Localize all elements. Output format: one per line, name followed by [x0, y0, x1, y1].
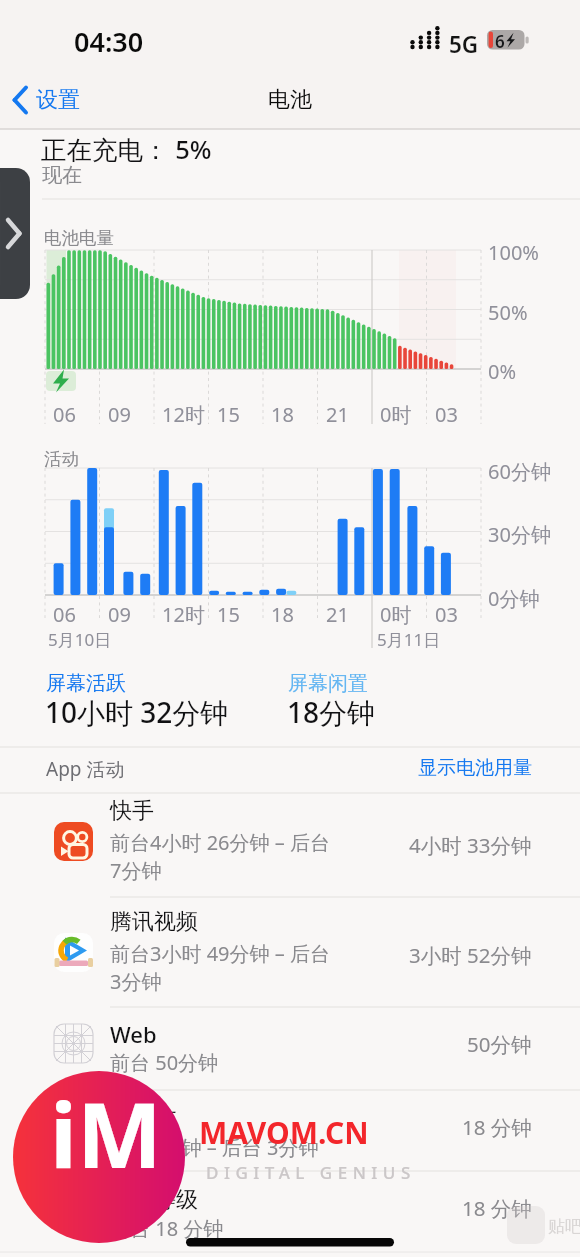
staticText: 前台8分钟 – 后台 3分钟	[110, 1134, 319, 1161]
staticText: 屏幕活跃	[46, 671, 126, 696]
staticText: 15	[217, 601, 240, 628]
staticText: 18	[271, 401, 294, 428]
staticText: App 活动	[46, 756, 125, 782]
staticText: 5月10日	[48, 628, 112, 651]
staticText: 06	[53, 601, 76, 628]
staticText: 前台3小时 49分钟 – 后台	[110, 940, 330, 967]
button[interactable]	[0, 168, 30, 299]
staticText: DIGITAL GENIUS	[206, 1161, 416, 1184]
staticText: 0时	[380, 401, 412, 428]
staticText: 21	[326, 601, 349, 628]
staticText: 电池电量	[44, 227, 114, 249]
staticText: 前台 50分钟	[110, 1049, 219, 1076]
staticText: Web	[110, 1019, 157, 1049]
staticText: 3小时 52分钟	[409, 941, 532, 969]
staticText: 5G	[449, 29, 479, 60]
staticText: 50分钟	[467, 1030, 532, 1058]
staticText: 5月11日	[377, 628, 441, 651]
staticText: 18 分钟	[462, 1113, 532, 1141]
staticText: 21	[326, 401, 349, 428]
staticText: 0分钟	[488, 585, 540, 612]
staticText: 12时	[162, 601, 205, 628]
staticText: 显示电池用量	[418, 756, 532, 780]
staticText: iM	[50, 1072, 162, 1195]
staticText: 腾讯视频	[110, 908, 198, 936]
staticText: 设置	[36, 86, 80, 114]
staticText: 信任等级	[110, 1186, 198, 1214]
staticText: 03	[435, 601, 458, 628]
staticText: 前台4小时 26分钟 – 后台	[110, 829, 330, 856]
staticText: 电池	[268, 86, 312, 114]
staticText: 12时	[162, 401, 205, 428]
staticText: 09	[108, 601, 131, 628]
staticText: 4小时 33分钟	[409, 831, 532, 859]
button[interactable]: 显示电池用量	[212, 756, 532, 780]
staticText: 18	[271, 601, 294, 628]
staticText: 现在	[42, 163, 82, 188]
staticText: 爱奇艺	[110, 1106, 176, 1134]
staticText: 3分钟	[110, 968, 162, 995]
staticText: 6	[495, 30, 505, 53]
staticText: 09	[108, 401, 131, 428]
staticText: 06	[53, 401, 76, 428]
button[interactable]	[42, 1012, 542, 1087]
staticText: 快手	[110, 797, 154, 825]
staticText: 屏幕闲置	[288, 671, 368, 696]
staticText: 前台 18 分钟	[110, 1215, 224, 1242]
staticText: MAVOM.CN	[199, 1112, 369, 1153]
staticText: 04:30	[74, 23, 144, 60]
staticText: 0%	[488, 358, 517, 385]
staticText: 7分钟	[110, 857, 162, 884]
button[interactable]	[42, 905, 542, 1000]
staticText: 100%	[488, 239, 539, 266]
staticText: 18分钟	[287, 693, 376, 731]
staticText: 0时	[380, 601, 412, 628]
staticText: 10小时 32分钟	[45, 693, 229, 731]
staticText: 50%	[488, 299, 528, 326]
staticText: 活动	[44, 448, 79, 470]
staticText: 60分钟	[488, 458, 551, 485]
staticText: 正在充电： 5%	[41, 132, 212, 167]
staticText: 03	[435, 401, 458, 428]
staticText: 贴吧	[548, 1216, 580, 1237]
staticText: 30分钟	[488, 521, 551, 548]
staticText: 18 分钟	[462, 1194, 532, 1222]
button[interactable]	[42, 800, 542, 895]
staticText: 15	[217, 401, 240, 428]
